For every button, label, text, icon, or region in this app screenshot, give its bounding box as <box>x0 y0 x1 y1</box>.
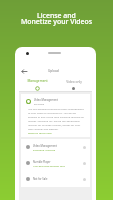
button[interactable]: Video Management <box>21 139 90 155</box>
staticText: Monetize your Videos <box>21 17 93 26</box>
staticText: Rumble Player <box>33 160 51 164</box>
staticText: Exclusive <box>34 102 45 105</box>
staticText: Non-exclusive Rumble Only <box>33 164 66 167</box>
button[interactable]: Read full terms here <box>28 131 52 134</box>
staticText: Video Management <box>34 98 58 102</box>
staticText: Video Management <box>33 144 57 148</box>
button[interactable]: Video only <box>55 78 92 91</box>
staticText: Not for Sale <box>33 177 48 181</box>
staticText: License and <box>37 11 76 20</box>
button[interactable]: Back <box>20 67 29 76</box>
staticText: Upload <box>48 69 59 73</box>
button[interactable]: Video Management <box>21 94 90 137</box>
staticText: You are assigning exclusive rights manag… <box>28 107 85 131</box>
staticText: Excluding YouTube <box>33 148 56 151</box>
button[interactable]: Not for Sale <box>21 171 90 187</box>
staticText: Video only <box>66 80 82 84</box>
staticText: Management <box>27 79 48 83</box>
button[interactable]: Rumble Player <box>21 155 90 171</box>
button[interactable]: Management <box>19 78 55 91</box>
